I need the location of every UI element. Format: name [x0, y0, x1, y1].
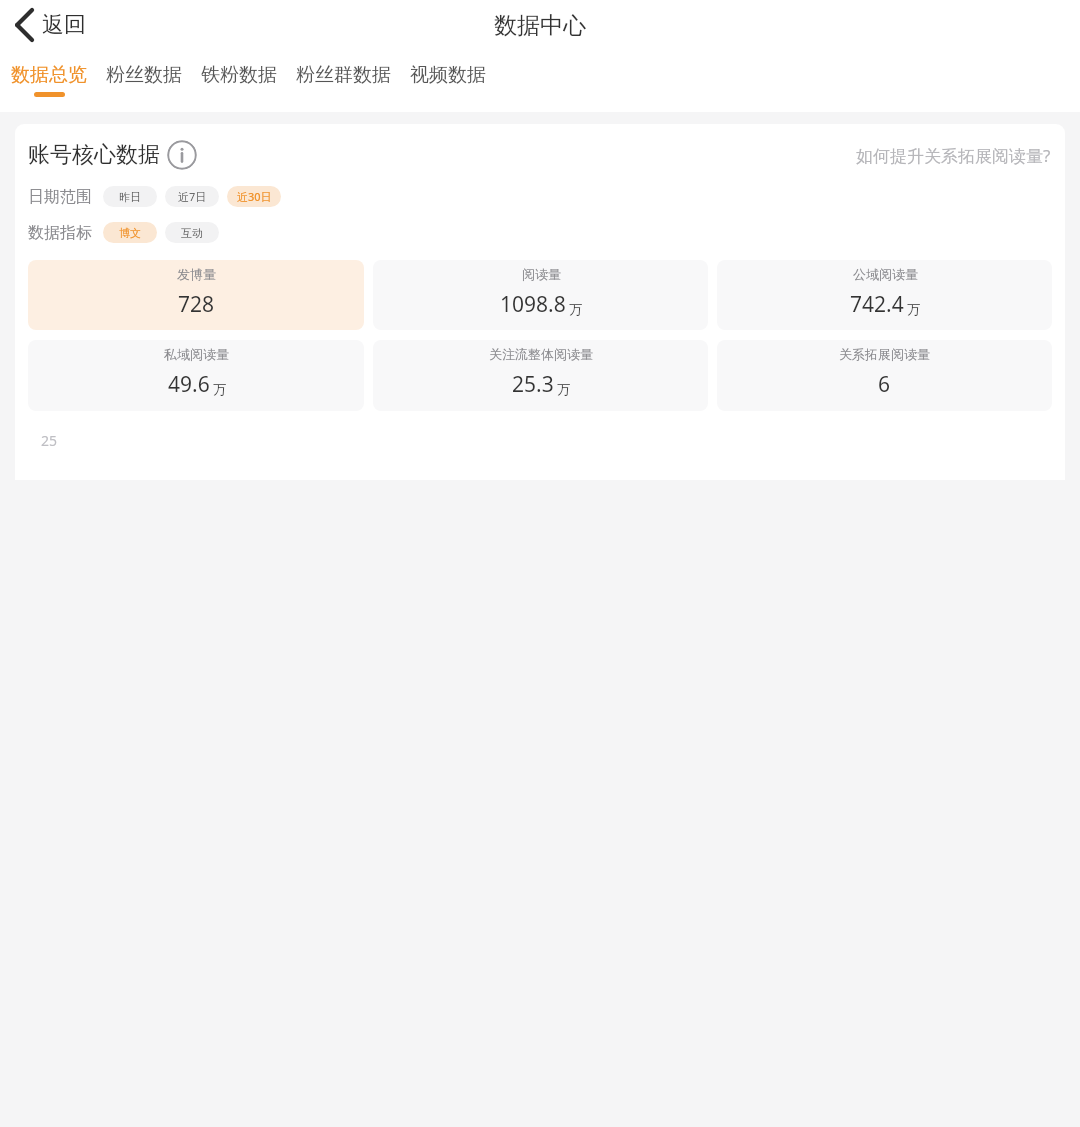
staticText: 铁粉数据 [201, 63, 277, 87]
staticText: 万 [569, 301, 582, 317]
staticText: 25 [41, 431, 58, 450]
staticText: 返回 [42, 11, 86, 39]
button[interactable]: 昨日 [103, 186, 157, 207]
staticText: 49.6 [168, 370, 210, 399]
staticText: 公域阅读量 [853, 266, 918, 282]
button[interactable]: 返回 [10, 4, 90, 46]
staticText: 如何提升关系拓展阅读量? [856, 144, 1051, 167]
staticText: 账号核心数据 [28, 141, 160, 169]
button[interactable]: 如何提升关系拓展阅读量? [856, 144, 1051, 167]
button[interactable]: 博文 [103, 222, 157, 243]
staticText: 视频数据 [410, 63, 486, 87]
button[interactable]: 私域阅读量 [28, 340, 364, 411]
staticText: 关系拓展阅读量 [839, 346, 930, 362]
staticText: 数据总览 [11, 63, 87, 87]
button[interactable]: 阅读量 [373, 260, 708, 330]
staticText: 6 [878, 370, 891, 399]
staticText: 昨日 [119, 190, 141, 204]
button[interactable]: 关系拓展阅读量 [717, 340, 1052, 411]
staticText: 数据指标 [28, 223, 92, 243]
staticText: 万 [213, 381, 226, 397]
button[interactable]: 发博量 [28, 260, 364, 330]
staticText: 粉丝群数据 [296, 63, 391, 87]
button[interactable]: 视频数据 [410, 50, 486, 87]
button[interactable]: 公域阅读量 [717, 260, 1052, 330]
staticText: 近7日 [178, 189, 207, 204]
staticText: 742.4 [850, 290, 904, 319]
button[interactable]: 粉丝数据 [106, 50, 182, 87]
staticText: 关注流整体阅读量 [489, 346, 593, 362]
staticText: 博文 [119, 226, 141, 240]
staticText: 25.3 [512, 370, 554, 399]
staticText: 互动 [181, 226, 203, 240]
button[interactable]: 铁粉数据 [201, 50, 277, 87]
button[interactable]: 近30日 [227, 186, 281, 207]
staticText: 728 [178, 290, 215, 319]
staticText: 数据中心 [494, 11, 586, 40]
staticText: 粉丝数据 [106, 63, 182, 87]
staticText: 1098.8 [500, 290, 566, 319]
staticText: 近30日 [237, 189, 272, 204]
staticText: 日期范围 [28, 187, 92, 207]
staticText: 万 [907, 301, 920, 317]
button[interactable]: 数据总览 [11, 50, 87, 97]
button[interactable]: 互动 [165, 222, 219, 243]
staticText: 私域阅读量 [164, 346, 229, 362]
staticText: 万 [557, 381, 570, 397]
staticText: 发博量 [177, 266, 216, 282]
staticText: 阅读量 [522, 266, 561, 282]
button[interactable]: 近7日 [165, 186, 219, 207]
button[interactable]: 粉丝群数据 [296, 50, 391, 87]
button[interactable]: 说明 [167, 140, 197, 170]
button[interactable]: 关注流整体阅读量 [373, 340, 708, 411]
